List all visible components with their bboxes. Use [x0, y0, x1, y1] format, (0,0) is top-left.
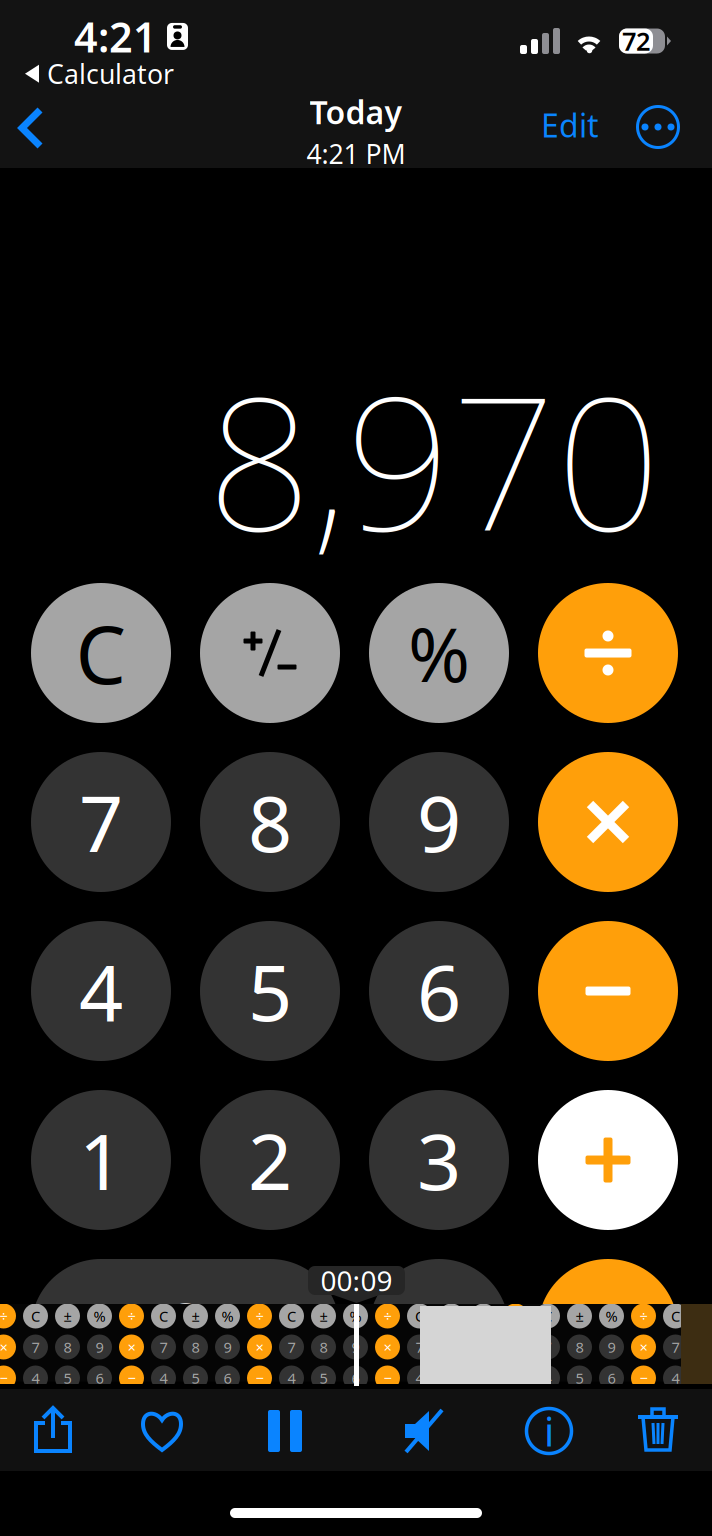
staticText: % [408, 603, 470, 703]
staticText: ± [575, 1306, 583, 1326]
staticText: 8,970 [207, 337, 661, 581]
staticText: 1 [79, 1109, 123, 1211]
staticText: % [349, 1306, 361, 1326]
staticText: − [127, 1368, 135, 1388]
button[interactable] [538, 583, 678, 723]
staticText: 7 [159, 1337, 167, 1357]
staticText: ÷ [639, 1306, 647, 1326]
button[interactable]: Info [509, 1393, 589, 1469]
staticText: ± [191, 1306, 199, 1326]
staticText: i [544, 1404, 554, 1457]
button[interactable]: Back [11, 98, 73, 158]
staticText: 9 [417, 771, 461, 873]
staticText: 5 [319, 1368, 327, 1388]
staticText: × [255, 1337, 263, 1357]
staticText: − [511, 1368, 519, 1388]
staticText: − [639, 1368, 647, 1388]
staticText: 00:09 [320, 1262, 392, 1299]
staticText: − [383, 1368, 391, 1388]
staticText: 5 [248, 940, 292, 1042]
button[interactable]: Share [13, 1392, 93, 1468]
staticText: C [31, 1306, 40, 1326]
staticText: ÷ [0, 1306, 7, 1326]
button[interactable]: C [31, 583, 171, 723]
staticText: % [605, 1306, 617, 1326]
button[interactable] [538, 1259, 678, 1399]
staticText: 8 [248, 771, 292, 873]
staticText: 8 [191, 1337, 199, 1357]
button[interactable]: 4 [31, 921, 171, 1061]
staticText: 7 [671, 1337, 679, 1357]
staticText: 6 [479, 1368, 487, 1388]
button[interactable] [538, 752, 678, 892]
staticText: 4 [31, 1368, 39, 1388]
staticText: 5 [447, 1368, 455, 1388]
staticText: 8 [63, 1337, 71, 1357]
button[interactable]: Pause [245, 1393, 325, 1469]
staticText: Edit [541, 104, 599, 146]
staticText: 4 [415, 1368, 423, 1388]
button[interactable]: 5 [200, 921, 340, 1061]
button[interactable]: More options [628, 97, 688, 157]
staticText: 4:21 PM [306, 136, 405, 171]
staticText: Calculator [47, 56, 174, 91]
staticText: 6 [607, 1368, 615, 1388]
button[interactable]: 7 [31, 752, 171, 892]
staticText: × [0, 1337, 7, 1357]
staticText: 7 [415, 1337, 423, 1357]
staticText: 4 [79, 940, 123, 1042]
staticText: C [671, 1306, 680, 1326]
staticText: 5 [63, 1368, 71, 1388]
staticText: 72 [622, 24, 650, 58]
button[interactable]: 0 [31, 1259, 340, 1399]
staticText: 4 [543, 1368, 551, 1388]
staticText: 6 [417, 940, 461, 1042]
button[interactable]: Edit [528, 96, 612, 154]
button[interactable]: 3 [369, 1090, 509, 1230]
staticText: Today [309, 90, 402, 133]
button[interactable]: Delete [618, 1391, 698, 1467]
staticText: 5 [703, 1368, 711, 1388]
staticText: ÷ [255, 1306, 263, 1326]
button[interactable]: Favorite [122, 1393, 202, 1469]
staticText: ± [63, 1306, 71, 1326]
button[interactable]: 9 [369, 752, 509, 892]
staticText: C [75, 600, 126, 706]
staticText: 7 [79, 771, 123, 873]
staticText: 2 [248, 1109, 292, 1211]
button[interactable]: 2 [200, 1090, 340, 1230]
button[interactable]: 1 [31, 1090, 171, 1230]
staticText: 3 [417, 1109, 461, 1211]
staticText: × [383, 1337, 391, 1357]
staticText: C [159, 1306, 168, 1326]
button[interactable]: % [369, 583, 509, 723]
staticText: 6 [223, 1368, 231, 1388]
button[interactable] [538, 921, 678, 1061]
staticText: − [0, 1368, 7, 1388]
staticText: 7 [287, 1337, 295, 1357]
staticText: % [221, 1306, 233, 1326]
staticText: % [93, 1306, 105, 1326]
button[interactable]: 8 [200, 752, 340, 892]
button[interactable] [200, 583, 340, 723]
staticText: C [415, 1306, 424, 1326]
button[interactable]: 6 [369, 921, 509, 1061]
staticText: ÷ [383, 1306, 391, 1326]
staticText: − [255, 1368, 263, 1388]
staticText: 8 [319, 1337, 327, 1357]
staticText: × [639, 1337, 647, 1357]
staticText: . [428, 1278, 449, 1380]
staticText: 9 [607, 1337, 615, 1357]
staticText: C [287, 1306, 296, 1326]
button[interactable]: Mute [384, 1393, 464, 1469]
button[interactable] [538, 1090, 678, 1230]
staticText: 4 [287, 1368, 295, 1388]
staticText: 0 [163, 1278, 207, 1380]
staticText: ± [319, 1306, 327, 1326]
button[interactable]: . [369, 1259, 509, 1399]
